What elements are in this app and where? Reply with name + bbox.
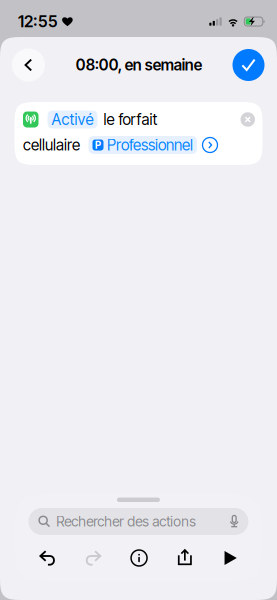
button[interactable]: Annuler bbox=[25, 546, 70, 570]
button[interactable]: Informations bbox=[116, 546, 162, 570]
button[interactable]: Rechercher des actions bbox=[28, 508, 248, 535]
staticText: cellulaire bbox=[23, 136, 80, 154]
staticText: 12:55 bbox=[18, 12, 58, 31]
button[interactable]: Lire bbox=[208, 546, 254, 570]
button[interactable]: Terminé bbox=[232, 49, 264, 81]
button[interactable]: Rétablir bbox=[70, 546, 116, 570]
button[interactable]: Supprimer bbox=[240, 112, 255, 127]
staticText: Rechercher des actions bbox=[56, 513, 196, 530]
button[interactable]: Options bbox=[197, 137, 217, 152]
staticText: le forfait bbox=[103, 110, 157, 129]
staticText: 08:00, en semaine bbox=[76, 56, 202, 74]
button[interactable]: Partager bbox=[162, 546, 208, 570]
staticText: Activé bbox=[51, 110, 93, 129]
button[interactable]: Retour bbox=[12, 48, 45, 81]
staticText: Professionnel bbox=[107, 136, 193, 154]
staticText: P bbox=[95, 139, 101, 151]
